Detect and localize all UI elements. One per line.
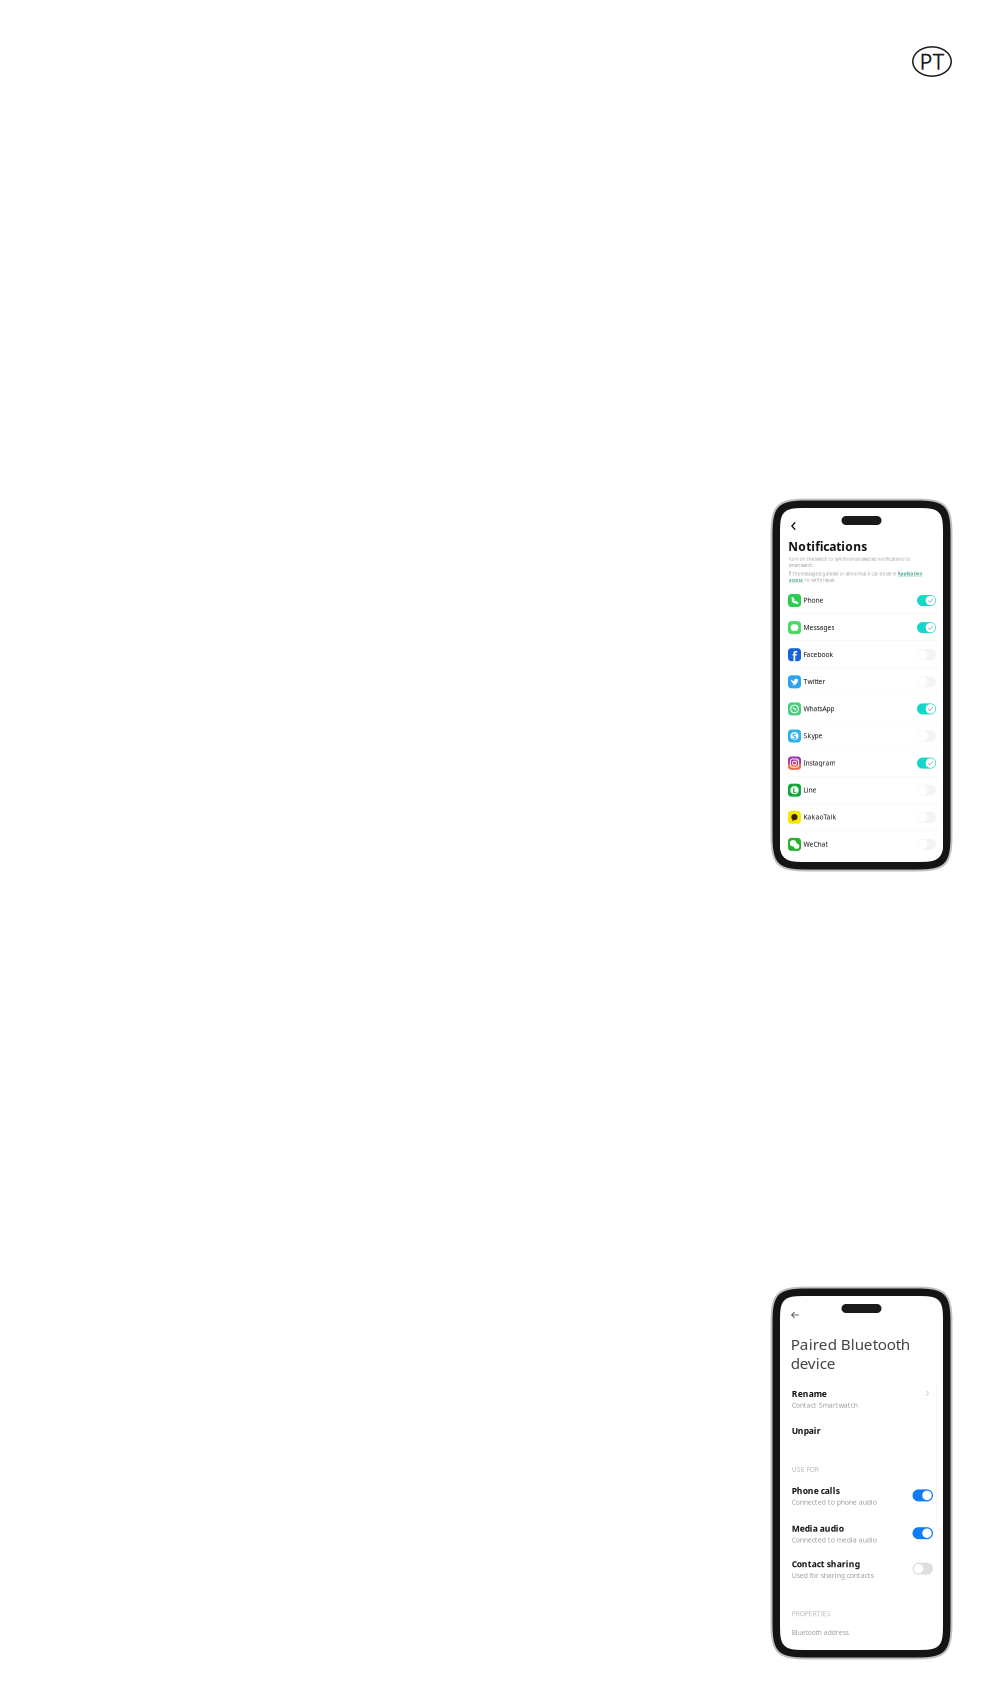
- staticText: Phone: [803, 596, 823, 605]
- staticText: Connected to phone audio: [792, 1497, 877, 1507]
- staticText: Connected to media audio: [792, 1535, 877, 1544]
- staticText: L: [792, 785, 796, 795]
- staticText: to verify repair.: [805, 577, 835, 583]
- staticText: Rename: [792, 1388, 827, 1399]
- button[interactable]: Phone: [780, 587, 943, 614]
- staticText: Instagram: [803, 758, 835, 767]
- staticText: Application: [897, 571, 922, 577]
- button[interactable]: Back: [788, 1308, 802, 1322]
- staticText: WeChat: [803, 840, 827, 849]
- staticText: Notifications: [788, 538, 867, 554]
- button[interactable]: Back: [787, 520, 799, 532]
- button[interactable]: Phone calls: [780, 1485, 943, 1507]
- button[interactable]: KakaoTalk: [780, 804, 943, 831]
- staticText: USE FOR: [792, 1465, 819, 1474]
- staticText: WhatsApp: [803, 704, 834, 713]
- staticText: Facebook: [803, 650, 833, 659]
- button[interactable]: Rename: [780, 1388, 943, 1412]
- staticText: Contact sharing: [792, 1558, 860, 1569]
- button[interactable]: L: [780, 777, 943, 804]
- staticText: device: [791, 1353, 836, 1373]
- button[interactable]: Messages: [780, 614, 943, 641]
- button[interactable]: Media audio: [780, 1523, 943, 1545]
- staticText: Turn on the switch to synchronize select…: [788, 556, 910, 562]
- staticText: Line: [803, 785, 816, 794]
- staticText: PROPERTIES: [792, 1609, 831, 1618]
- button[interactable]: Instagram: [780, 750, 943, 777]
- button[interactable]: WeChat: [780, 831, 943, 858]
- staticText: Twitter: [803, 677, 825, 686]
- staticText: Paired Bluetooth: [791, 1334, 910, 1354]
- staticText: Phone calls: [792, 1485, 840, 1496]
- staticText: access: [788, 577, 802, 583]
- staticText: Bluetooth address: [792, 1628, 849, 1637]
- staticText: S: [792, 730, 797, 742]
- staticText: Skype: [803, 731, 822, 740]
- staticText: KakaoTalk: [803, 813, 836, 821]
- button[interactable]: Unpair: [780, 1425, 943, 1439]
- staticText: smartwatch.: [788, 562, 813, 568]
- button[interactable]: f: [780, 641, 943, 668]
- staticText: If the message is garbled or abnormal, i…: [788, 571, 896, 577]
- staticText: Used for sharing contacts: [792, 1571, 874, 1580]
- staticText: Media audio: [792, 1523, 844, 1534]
- button[interactable]: S: [780, 722, 943, 750]
- button[interactable]: Contact sharing: [780, 1558, 943, 1580]
- staticText: PT: [919, 47, 944, 76]
- staticText: f: [792, 648, 797, 664]
- staticText: Unpair: [792, 1425, 821, 1436]
- staticText: Contact Smartwatch: [792, 1400, 858, 1410]
- button[interactable]: Twitter: [780, 668, 943, 695]
- button[interactable]: WhatsApp: [780, 695, 943, 722]
- staticText: Messages: [803, 623, 834, 632]
